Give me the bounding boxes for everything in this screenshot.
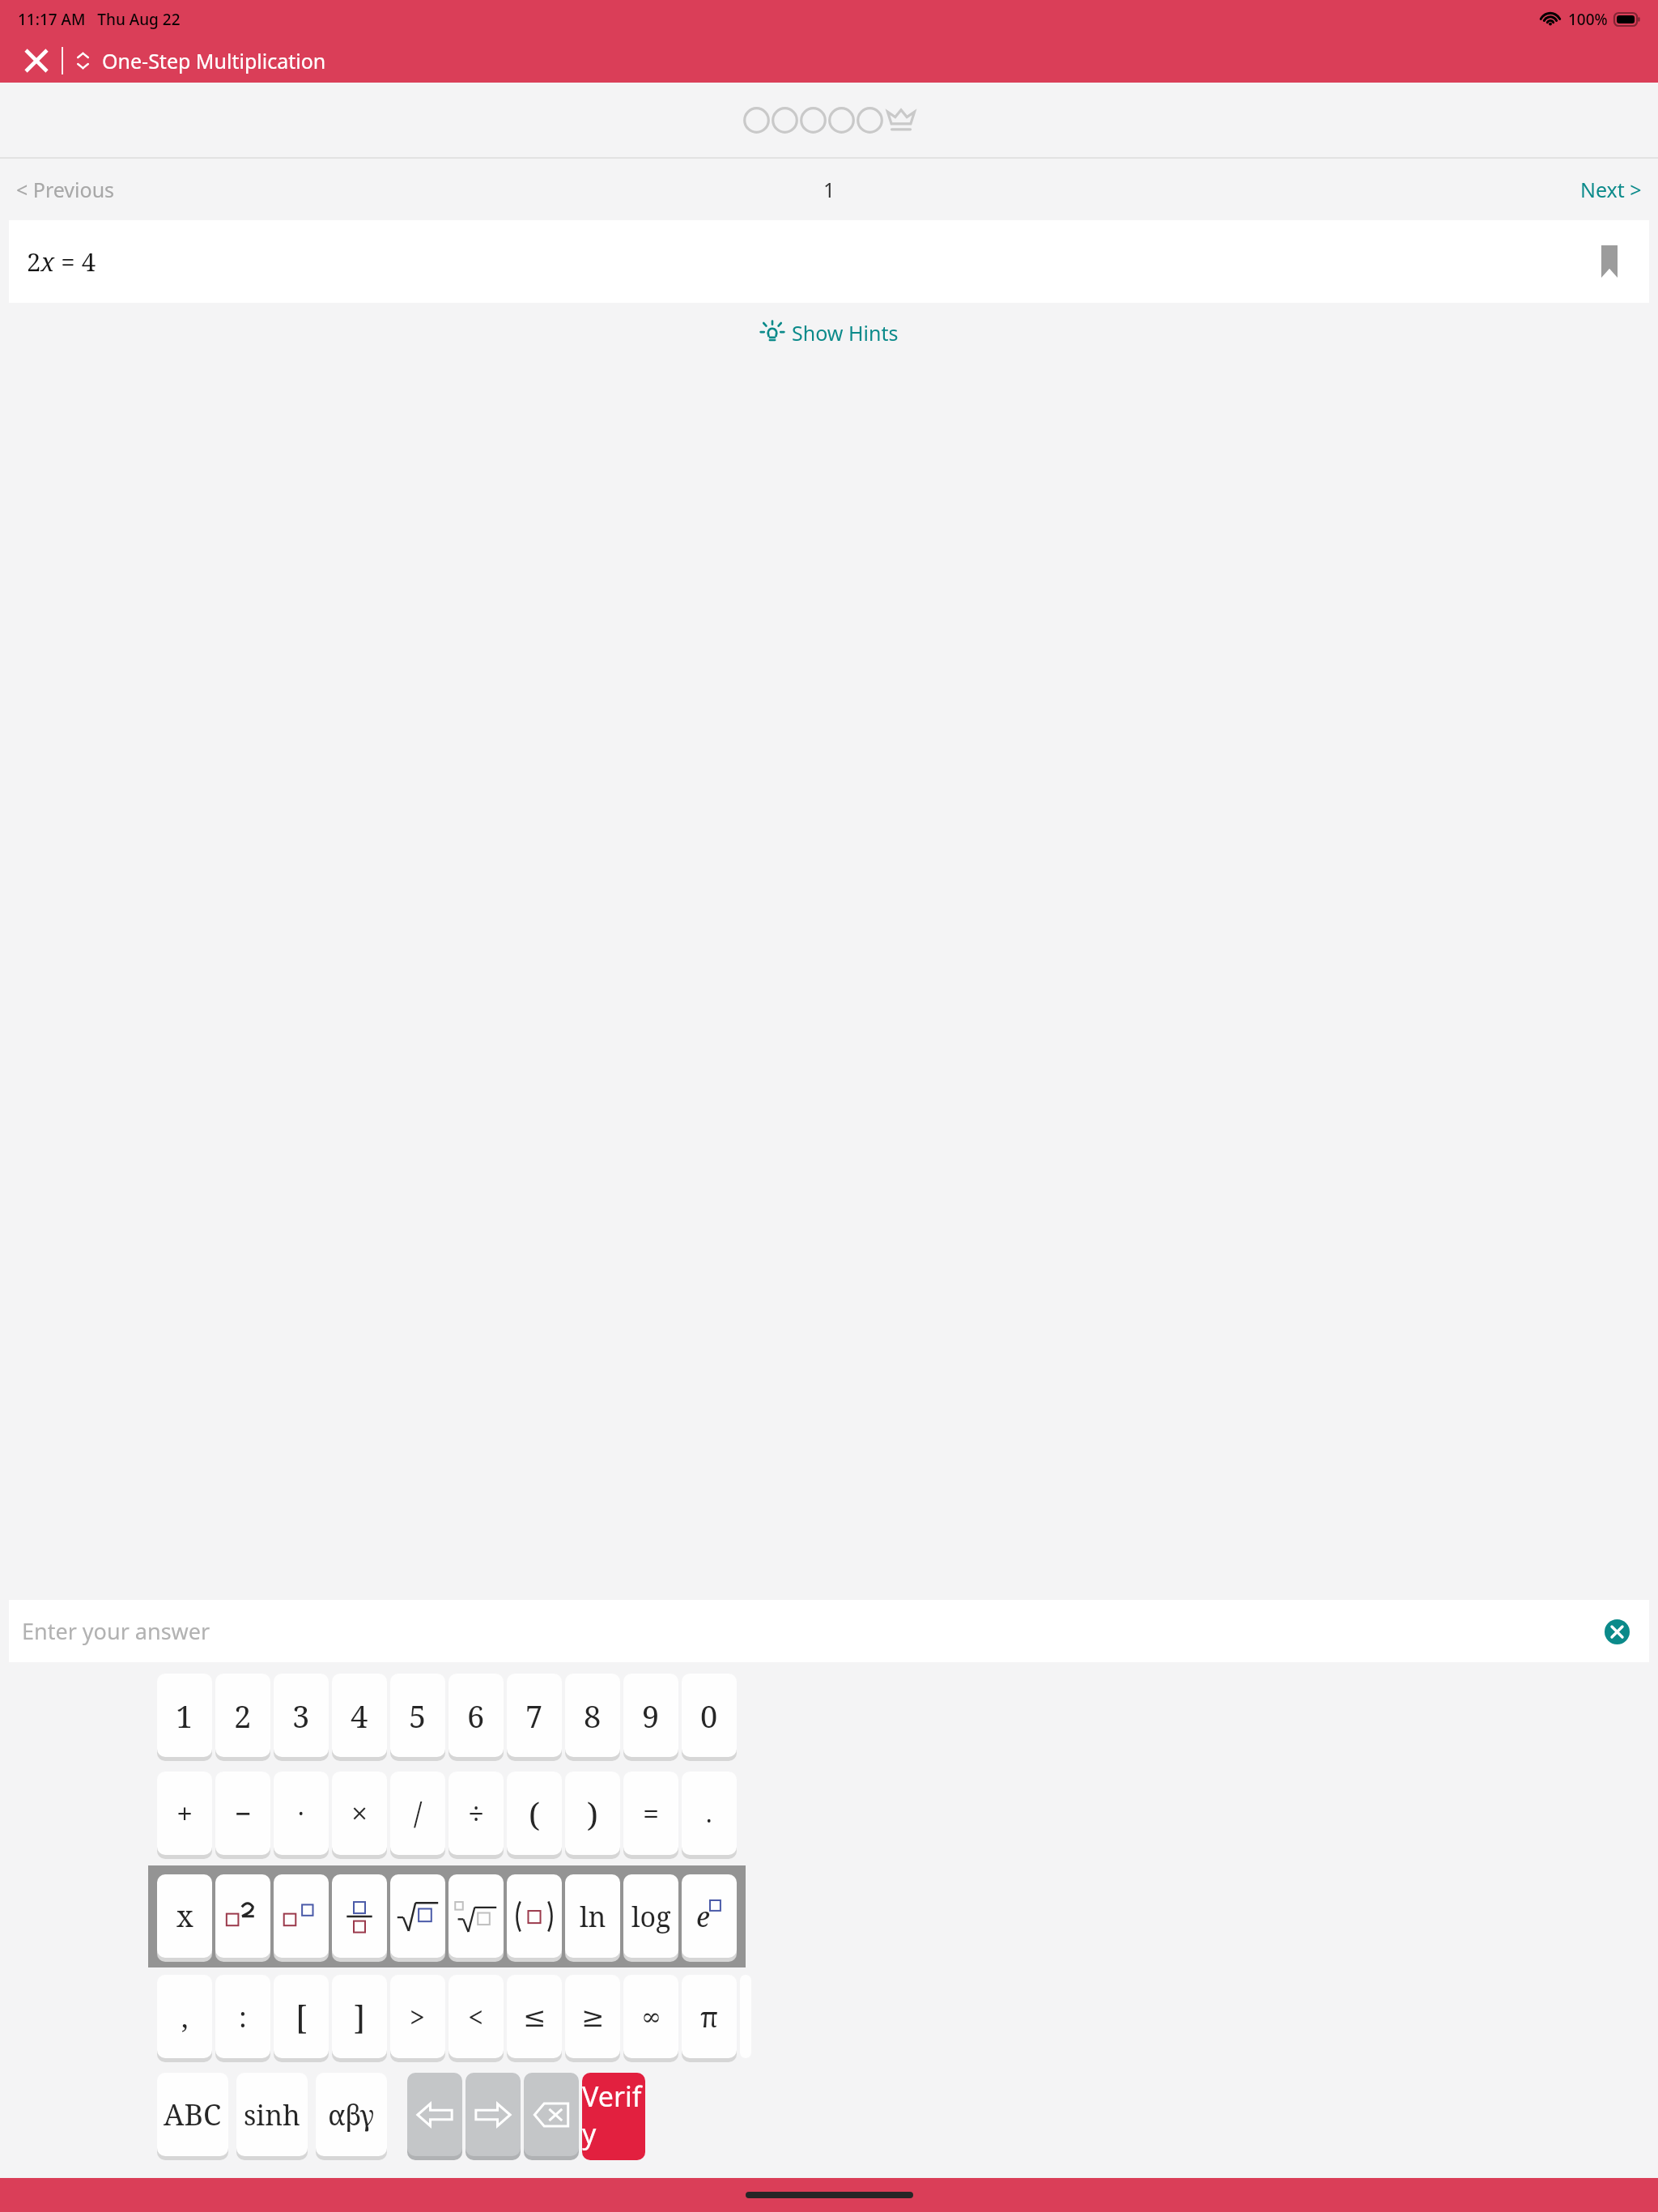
staticText: Show Hints [792,319,899,347]
button[interactable]: Enter your answer [9,1600,1649,1662]
button[interactable]: ] [332,1975,387,2058]
staticText: 0 [700,1695,718,1737]
button[interactable]: ln [565,1874,620,1958]
button[interactable]: αβγ [316,2073,387,2156]
button[interactable]: 1 [157,1674,212,1757]
button[interactable]: Verify [582,2073,645,2156]
staticText: Verify [582,2078,645,2152]
button[interactable]: ≤ [507,1975,562,2058]
staticText: One-Step Multiplication [102,47,326,74]
button[interactable]: 9 [623,1674,678,1757]
button[interactable]: Move cursor right [466,2073,521,2156]
button[interactable]: − [215,1772,270,1855]
button[interactable]: ÷ [449,1772,504,1855]
button[interactable]: Fraction [332,1874,387,1958]
button[interactable]: Clear answer [1599,1614,1635,1649]
button[interactable]: Nth root [449,1874,504,1958]
button[interactable]: Bookmark [1591,243,1628,280]
button[interactable]: 0 [682,1674,737,1757]
button[interactable]: Move cursor left [407,2073,462,2156]
button[interactable]: 8 [565,1674,620,1757]
staticText: αβγ [328,2096,375,2133]
staticText: 11:17 AM Thu Aug 22 [18,9,181,30]
staticText: 100% [1568,9,1608,30]
staticText: Enter your answer [22,1616,210,1646]
button[interactable]: · [274,1772,329,1855]
staticText: e [696,1898,710,1935]
button[interactable]: 4 [332,1674,387,1757]
button[interactable]: < [449,1975,504,2058]
staticText: 2x = 4 [27,245,96,279]
staticText: sinh [244,2096,300,2133]
staticText: 5 [409,1695,427,1737]
staticText: log [631,1898,671,1935]
button[interactable]: 2 [215,1674,270,1757]
button[interactable]: Square root [390,1874,445,1958]
button[interactable]: sinh [236,2073,308,2156]
button[interactable]: 7 [507,1674,562,1757]
button[interactable]: ( [507,1772,562,1855]
button[interactable]: : [215,1975,270,2058]
button[interactable]: e to the power [682,1874,737,1958]
button[interactable]: Parentheses [507,1874,562,1958]
staticText: x [176,1896,193,1936]
button[interactable]: Power [274,1874,329,1958]
button[interactable]: Backspace [524,2073,579,2156]
staticText: − [235,1793,252,1833]
button[interactable]: < Previous [5,169,126,210]
button[interactable]: 2x = 4 [9,220,1649,303]
button[interactable]: . [682,1772,737,1855]
button[interactable]: 6 [449,1674,504,1757]
staticText: [ [295,1995,308,2039]
staticText: > [410,1998,426,2035]
button[interactable]: 3 [274,1674,329,1757]
button[interactable]: + [157,1772,212,1855]
button[interactable]: x [157,1874,212,1958]
staticText: 1 [176,1695,193,1737]
staticText: ∞ [641,2002,661,2031]
button[interactable]: , [157,1975,212,2058]
staticText: 8 [584,1695,602,1737]
button[interactable]: ≥ [565,1975,620,2058]
staticText: = [643,1793,660,1833]
staticText: ] [354,1995,366,2039]
staticText: 2 [234,1695,252,1737]
staticText: ) [587,1792,598,1836]
button[interactable]: Square [215,1874,270,1958]
button[interactable]: 5 [390,1674,445,1757]
button[interactable]: ∞ [623,1975,678,2058]
button[interactable]: = [623,1772,678,1855]
staticText: ln [580,1898,606,1935]
staticText: 7 [525,1695,543,1737]
staticText: 1 [823,176,835,203]
button[interactable]: Close [18,42,55,79]
staticText: ABC [164,2095,222,2134]
button[interactable]: / [390,1772,445,1855]
button[interactable]: π [682,1975,737,2058]
staticText: + [176,1793,193,1833]
staticText: 3 [292,1695,310,1737]
staticText: Next > [1580,176,1642,203]
staticText: ≥ [581,2001,605,2033]
button[interactable]: [ [274,1975,329,2058]
button[interactable]: ) [565,1772,620,1855]
staticText: π [700,1998,719,2035]
button[interactable]: Show Hints [750,314,908,351]
staticText: ≤ [523,2001,546,2033]
staticText: ( [529,1792,540,1836]
staticText: . [706,1797,712,1830]
staticText: 9 [642,1695,660,1737]
staticText: 4 [351,1695,368,1737]
button[interactable]: ABC [157,2073,228,2156]
button[interactable]: Expand lesson list [71,49,94,72]
button[interactable]: × [332,1772,387,1855]
other: Mastery crown [886,108,916,133]
staticText: < Previous [16,176,115,203]
staticText: × [351,1793,368,1833]
button[interactable]: > [390,1975,445,2058]
button[interactable]: log [623,1874,678,1958]
staticText: · [298,1797,304,1830]
button[interactable]: Next > [1569,169,1653,210]
staticText: < [468,1998,484,2035]
